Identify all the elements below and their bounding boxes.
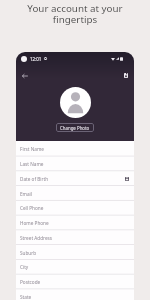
staticText: Home Phone bbox=[20, 220, 49, 226]
button[interactable]: Email bbox=[16, 186, 134, 201]
button[interactable]: Date of Birth bbox=[16, 171, 134, 186]
staticText: Suburb bbox=[20, 250, 37, 256]
button[interactable]: Suburb bbox=[16, 245, 134, 260]
staticText: Street Address bbox=[20, 235, 53, 241]
staticText: Date of Birth bbox=[20, 176, 49, 182]
button[interactable]: First Name bbox=[16, 141, 134, 156]
staticText: Postcode bbox=[20, 279, 41, 285]
staticText: First Name bbox=[20, 146, 44, 152]
staticText: State bbox=[20, 294, 32, 300]
button[interactable]: City bbox=[16, 259, 134, 274]
button[interactable]: Back bbox=[19, 70, 30, 81]
staticText: Cell Phone bbox=[20, 205, 44, 211]
staticText: Change Photo bbox=[60, 125, 90, 131]
button[interactable]: State bbox=[16, 289, 134, 300]
staticText: City bbox=[20, 264, 29, 270]
button[interactable]: Save bbox=[120, 70, 131, 81]
button[interactable]: Cell Phone bbox=[16, 200, 134, 215]
staticText: Email bbox=[20, 191, 33, 197]
staticText: Your account at your fingertips bbox=[27, 2, 123, 26]
button[interactable]: Street Address bbox=[16, 230, 134, 245]
button[interactable]: Postcode bbox=[16, 274, 134, 289]
button[interactable]: Last Name bbox=[16, 156, 134, 171]
button[interactable]: Home Phone bbox=[16, 215, 134, 230]
button[interactable]: Change Photo bbox=[56, 123, 94, 132]
staticText: 12:01 bbox=[30, 56, 42, 62]
staticText: Last Name bbox=[20, 161, 44, 167]
